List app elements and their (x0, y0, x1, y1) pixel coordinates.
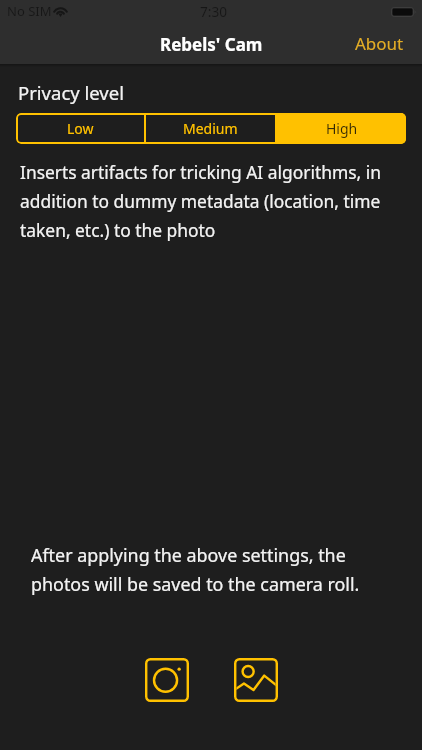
staticText: Privacy level (18, 80, 124, 105)
staticText: No SIM (7, 2, 52, 20)
staticText: After applying the above settings, the p… (31, 543, 369, 596)
staticText: Medium (183, 119, 238, 138)
staticText: Rebels' Cam (160, 33, 263, 56)
button[interactable]: Take photo (145, 658, 189, 702)
staticText: 7:30 (200, 2, 227, 21)
staticText: Inserts artifacts for tricking AI algori… (20, 160, 402, 242)
button[interactable]: Medium (146, 113, 275, 144)
button[interactable]: High (277, 113, 406, 144)
button[interactable]: Open gallery (234, 658, 278, 702)
staticText: About (355, 32, 404, 55)
button[interactable]: About (341, 24, 422, 64)
staticText: Low (67, 119, 94, 138)
button[interactable]: Low (16, 113, 144, 144)
staticText: High (326, 119, 358, 138)
